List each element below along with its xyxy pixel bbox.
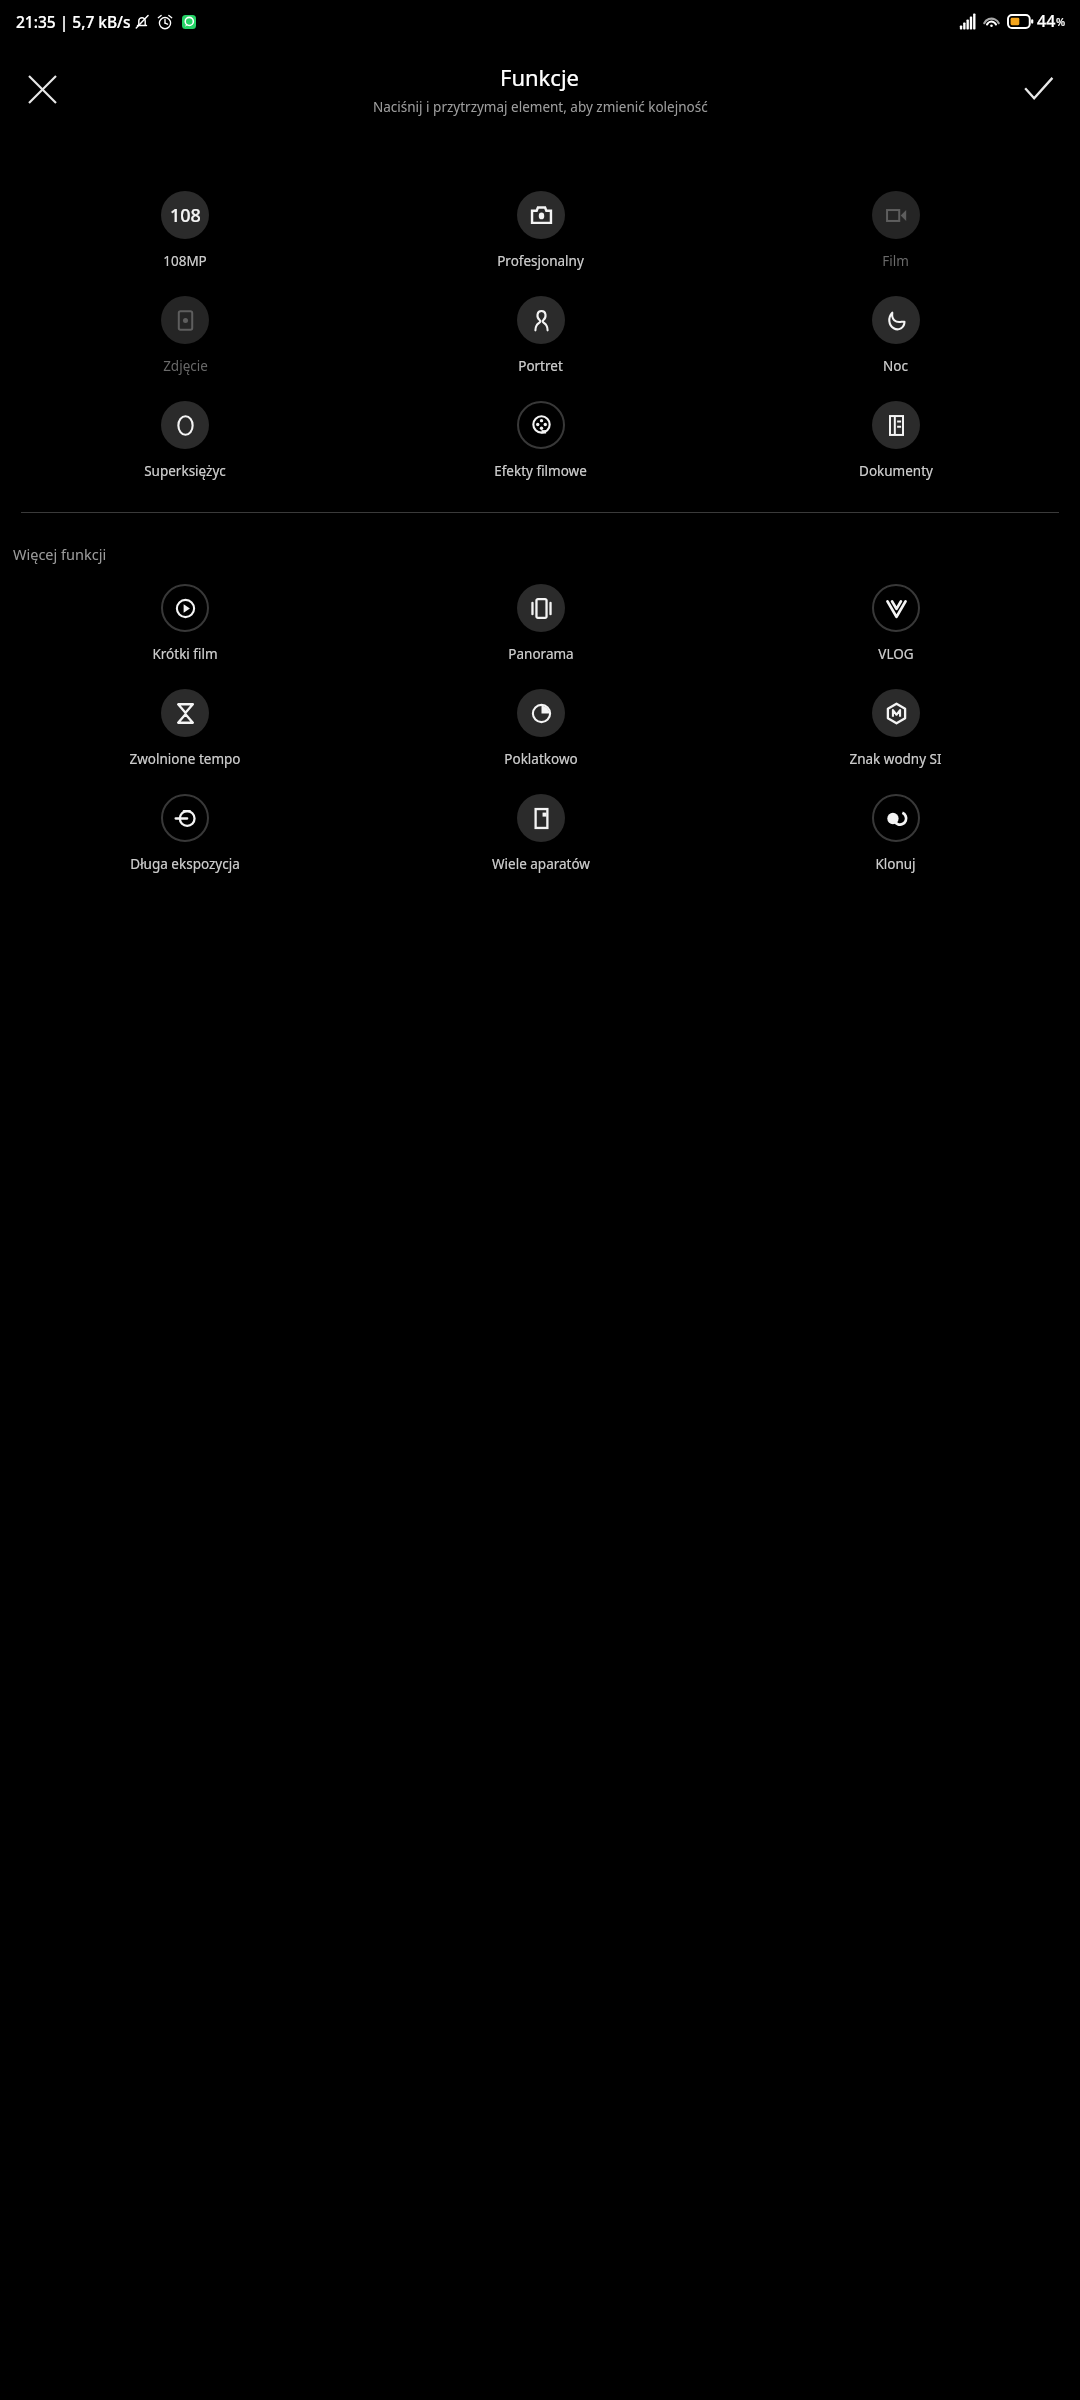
button[interactable]: Zamknij — [16, 63, 68, 115]
staticText: Znak wodny SI — [849, 750, 942, 768]
button[interactable]: Superksiężyc — [7, 401, 363, 480]
staticText: Panorama — [508, 645, 574, 663]
staticText: 108MP — [163, 252, 207, 270]
staticText: Dokumenty — [859, 462, 933, 480]
button[interactable]: Zwolnione tempo — [7, 689, 363, 768]
button[interactable]: Zatwierdź — [1012, 63, 1064, 115]
button[interactable]: Efekty filmowe — [363, 401, 718, 480]
staticText: Portret — [518, 357, 563, 375]
button[interactable]: Klonuj — [718, 794, 1073, 873]
staticText: Noc — [883, 357, 908, 375]
staticText: 108 — [170, 203, 201, 228]
staticText: Zwolnione tempo — [129, 750, 241, 768]
staticText: Film — [882, 252, 909, 270]
button[interactable]: Panorama — [363, 584, 718, 663]
staticText: Poklatkowo — [504, 750, 578, 768]
staticText: VLOG — [878, 645, 914, 663]
staticText: Funkcje — [500, 62, 580, 92]
staticText: % — [1056, 14, 1066, 29]
button[interactable]: VLOG — [718, 584, 1073, 663]
button[interactable]: Poklatkowo — [363, 689, 718, 768]
staticText: Profesjonalny — [497, 252, 584, 270]
button[interactable]: Krótki film — [7, 584, 363, 663]
staticText: Naciśnij i przytrzymaj element, aby zmie… — [373, 98, 708, 116]
button[interactable]: Profesjonalny — [363, 191, 718, 270]
button[interactable]: Zdjęcie — [7, 296, 363, 375]
staticText: 21:35 | 5,7 kB/s — [16, 11, 131, 32]
staticText: Więcej funkcji — [13, 544, 107, 564]
staticText: Długa ekspozycja — [130, 855, 240, 873]
staticText: Superksiężyc — [144, 462, 226, 480]
button[interactable]: Dokumenty — [718, 401, 1073, 480]
button[interactable]: Wiele aparatów — [363, 794, 718, 873]
button[interactable]: Noc — [718, 296, 1073, 375]
staticText: 44 — [1037, 10, 1056, 32]
staticText: Wiele aparatów — [492, 855, 590, 873]
button[interactable]: Znak wodny SI — [718, 689, 1073, 768]
button[interactable]: Długa ekspozycja — [7, 794, 363, 873]
staticText: Efekty filmowe — [494, 462, 587, 480]
staticText: Klonuj — [875, 855, 916, 873]
staticText: Krótki film — [152, 645, 218, 663]
button[interactable]: Film — [718, 191, 1073, 270]
button[interactable]: Portret — [363, 296, 718, 375]
staticText: Zdjęcie — [163, 357, 208, 375]
button[interactable]: 108 — [7, 191, 363, 270]
